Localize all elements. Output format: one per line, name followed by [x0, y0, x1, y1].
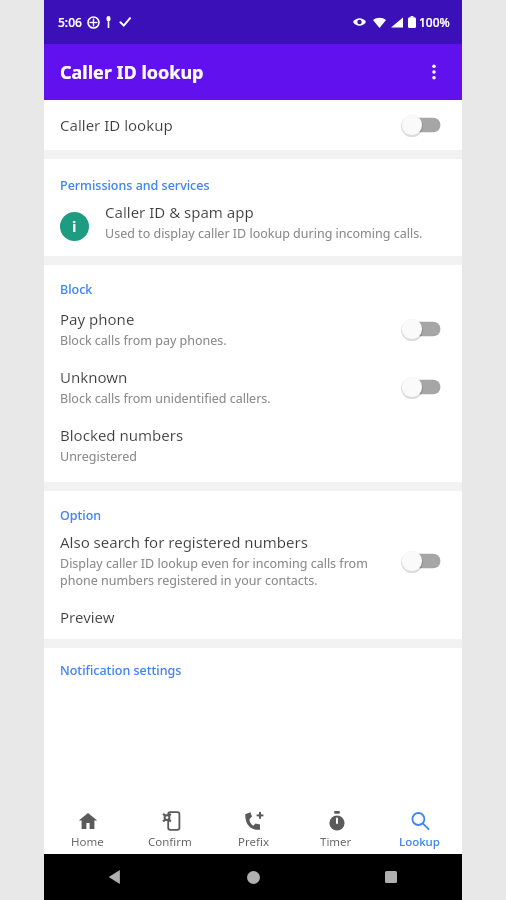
button[interactable]: Also search for registered numbers	[44, 526, 462, 595]
staticText: Option	[60, 507, 102, 524]
staticText: Also search for registered numbers	[60, 532, 308, 552]
staticText: Unknown	[60, 367, 128, 387]
staticText: Pay phone	[60, 309, 135, 329]
staticText: Permissions and services	[60, 177, 210, 194]
staticText: Caller ID lookup	[60, 115, 173, 135]
button[interactable]: Recents	[376, 862, 406, 892]
staticText: Notification settings	[60, 662, 182, 679]
staticText: Display caller ID lookup even for incomi…	[60, 555, 390, 589]
button[interactable]: Lookup	[379, 804, 459, 854]
staticText: Caller ID & spam app	[105, 202, 254, 222]
staticText: Block calls from unidentified callers.	[60, 390, 271, 407]
button[interactable]: Preview	[44, 595, 462, 639]
button[interactable]: Back	[100, 862, 130, 892]
staticText: Lookup	[399, 834, 440, 850]
button[interactable]: Prefix	[213, 804, 293, 854]
staticText: i	[72, 217, 77, 236]
button[interactable]: More options	[412, 50, 456, 94]
staticText: Confirm	[148, 834, 192, 850]
button[interactable]	[400, 373, 446, 401]
button[interactable]: Blocked numbers	[44, 416, 462, 474]
button[interactable]: Timer	[296, 804, 376, 854]
button[interactable]: Confirm	[130, 804, 210, 854]
button[interactable]	[400, 111, 446, 139]
button[interactable]	[400, 315, 446, 343]
staticText: Home	[71, 834, 104, 850]
staticText: Preview	[60, 607, 115, 627]
staticText: Unregistered	[60, 448, 137, 465]
staticText: Caller ID lookup	[60, 60, 204, 85]
staticText: Block calls from pay phones.	[60, 332, 227, 349]
button[interactable]	[400, 547, 446, 575]
button[interactable]: Unknown	[44, 358, 462, 416]
staticText: 5:06	[58, 14, 82, 30]
button[interactable]: i	[44, 196, 462, 256]
button[interactable]: Home	[47, 804, 127, 854]
staticText: 100%	[419, 14, 450, 30]
button[interactable]: Pay phone	[44, 300, 462, 358]
button[interactable]: Home	[238, 862, 268, 892]
button[interactable]: Caller ID lookup	[44, 100, 462, 150]
staticText: Block	[60, 281, 93, 298]
staticText: Timer	[320, 834, 352, 850]
staticText: Used to display caller ID lookup during …	[105, 225, 446, 242]
staticText: Blocked numbers	[60, 425, 184, 445]
staticText: Prefix	[238, 834, 269, 850]
